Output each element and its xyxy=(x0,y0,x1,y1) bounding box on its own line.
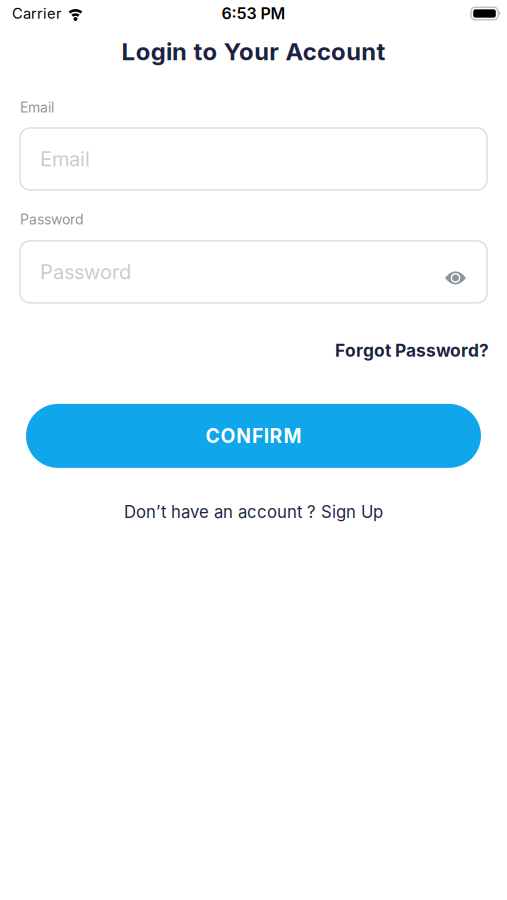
staticText: Forgot Password? xyxy=(335,340,489,361)
button[interactable]: Show password xyxy=(445,259,487,284)
staticText: 6:53 PM xyxy=(221,4,285,23)
button[interactable]: Password xyxy=(20,241,487,303)
staticText: CONFIRM xyxy=(206,424,301,448)
staticText: Email xyxy=(40,147,90,171)
button[interactable]: Sign Up xyxy=(321,502,383,522)
button[interactable]: CONFIRM xyxy=(26,404,481,468)
staticText: Password xyxy=(20,211,84,228)
staticText: Sign Up xyxy=(321,502,383,522)
button[interactable]: Forgot Password? xyxy=(335,340,489,361)
button[interactable]: Email xyxy=(20,128,487,190)
staticText: Don’t have an account ? xyxy=(124,502,321,522)
staticText: Carrier xyxy=(12,5,62,22)
staticText: Login to Your Account xyxy=(121,37,385,66)
staticText: Password xyxy=(40,260,131,284)
staticText: Email xyxy=(20,99,54,116)
